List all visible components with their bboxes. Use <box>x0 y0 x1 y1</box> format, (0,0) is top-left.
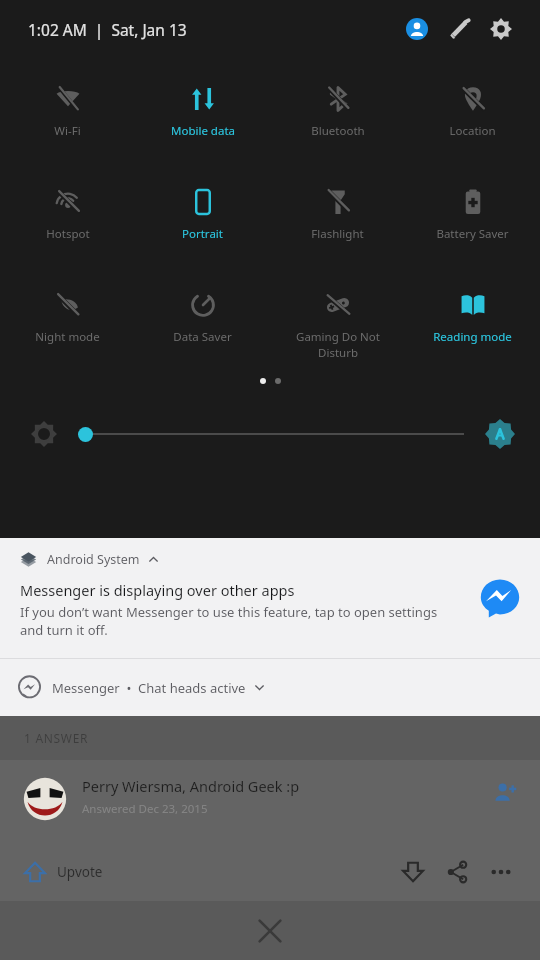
button[interactable]: Settings <box>480 8 522 50</box>
button[interactable]: Share <box>442 857 472 887</box>
button[interactable]: Bluetooth <box>270 84 405 141</box>
button[interactable]: Edit tiles <box>438 8 480 50</box>
staticText: Flashlight <box>311 226 364 242</box>
button[interactable]: Portrait <box>135 187 270 244</box>
staticText: Battery Saver <box>436 226 509 242</box>
staticText: Android System <box>47 551 140 568</box>
button[interactable]: More options <box>486 857 516 887</box>
staticText: Answered Dec 23, 2015 <box>82 801 208 817</box>
button[interactable]: Brightness <box>28 418 60 450</box>
button[interactable]: Upvote <box>24 857 103 887</box>
staticText: Messenger • Chat heads active <box>52 679 246 697</box>
staticText: Night mode <box>35 329 100 345</box>
button[interactable]: Mobile data <box>135 84 270 141</box>
staticText: Data Saver <box>173 329 232 345</box>
staticText: Location <box>449 123 496 139</box>
staticText: 1:02 AM | Sat, Jan 13 <box>28 19 187 40</box>
staticText: Hotspot <box>46 226 90 242</box>
staticText: Bluetooth <box>311 123 365 139</box>
button[interactable]: Data Saver <box>135 290 270 347</box>
staticText: Mobile data <box>171 123 235 139</box>
button[interactable]: Battery Saver <box>405 187 540 244</box>
button[interactable]: Android System <box>0 538 540 658</box>
button[interactable]: Auto brightness <box>482 416 518 452</box>
staticText: Gaming Do Not Disturb <box>296 329 380 360</box>
button[interactable] <box>78 421 464 447</box>
button[interactable]: Wi-Fi <box>0 84 135 141</box>
staticText: If you don’t want Messenger to use this … <box>20 603 444 639</box>
button[interactable]: Gaming Do Not Disturb <box>270 290 405 362</box>
button[interactable]: User account <box>396 8 438 50</box>
button[interactable]: Follow user <box>490 778 520 808</box>
staticText: 1 ANSWER <box>24 730 89 746</box>
button[interactable]: Night mode <box>0 290 135 347</box>
button[interactable]: Downvote <box>398 857 428 887</box>
staticText: Perry Wiersma, Android Geek :p <box>82 776 300 796</box>
button[interactable]: Messenger • Chat heads active <box>0 659 540 716</box>
button[interactable]: Flashlight <box>270 187 405 244</box>
button[interactable]: Location <box>405 84 540 141</box>
staticText: Reading mode <box>433 329 512 345</box>
button[interactable]: Close notification shade <box>244 905 296 957</box>
staticText: Portrait <box>182 226 223 242</box>
staticText: Messenger is displaying over other apps <box>20 580 295 600</box>
staticText: Wi-Fi <box>54 123 81 139</box>
button[interactable]: Hotspot <box>0 187 135 244</box>
button[interactable]: Reading mode <box>405 290 540 347</box>
staticText: Upvote <box>57 863 103 881</box>
